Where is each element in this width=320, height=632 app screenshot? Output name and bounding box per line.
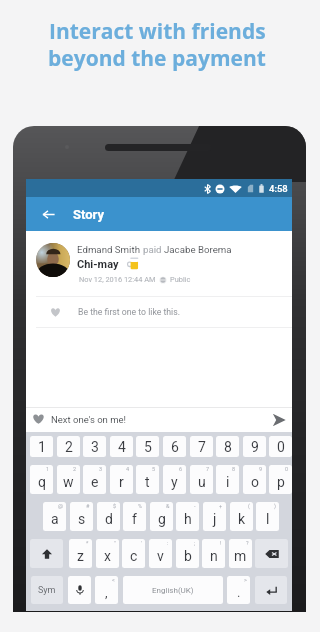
- button[interactable]: 8: [216, 436, 239, 457]
- staticText: 8: [224, 439, 232, 455]
- button[interactable]: Backspace: [255, 539, 288, 568]
- button[interactable]: !: [202, 539, 225, 568]
- button[interactable]: 4: [110, 436, 133, 457]
- button[interactable]: (: [230, 502, 253, 531]
- staticText: 0: [285, 466, 289, 472]
- button[interactable]: Back: [33, 197, 64, 231]
- staticText: p: [277, 474, 285, 490]
- button[interactable]: ): [256, 502, 279, 531]
- staticText: Nov 12, 2016 12:44 AM: [79, 275, 156, 284]
- staticText: *: [86, 540, 89, 546]
- staticText: >: [244, 577, 247, 583]
- button[interactable]: 0: [269, 436, 292, 457]
- button[interactable]: ;: [176, 539, 199, 568]
- staticText: c: [130, 548, 138, 564]
- button[interactable]: >: [227, 576, 250, 604]
- button[interactable]: 1: [30, 436, 53, 457]
- staticText: 8: [232, 466, 236, 472]
- button[interactable]: 9: [243, 465, 266, 494]
- staticText: Interact with friends: [49, 17, 266, 46]
- button[interactable]: <: [95, 576, 118, 604]
- button[interactable]: Shift: [30, 539, 63, 568]
- staticText: g: [158, 511, 166, 527]
- staticText: 2: [65, 439, 73, 455]
- staticText: $: [113, 503, 117, 509]
- staticText: ': [141, 540, 142, 546]
- staticText: 3: [91, 439, 99, 455]
- staticText: n: [210, 548, 218, 564]
- staticText: e: [91, 474, 99, 490]
- button[interactable]: English(UK): [123, 576, 223, 604]
- staticText: ;: [194, 540, 196, 546]
- staticText: (: [248, 503, 250, 509]
- staticText: -: [194, 503, 196, 509]
- button[interactable]: Enter: [255, 576, 287, 604]
- button[interactable]: 5: [136, 465, 159, 494]
- button[interactable]: %: [123, 502, 146, 531]
- button[interactable]: Voice input: [68, 576, 91, 604]
- button[interactable]: 1: [30, 465, 53, 494]
- staticText: u: [198, 474, 206, 490]
- button[interactable]: #: [70, 502, 93, 531]
- button[interactable]: 7: [190, 465, 213, 494]
- staticText: 3: [99, 466, 103, 472]
- staticText: ?: [246, 540, 249, 546]
- button[interactable]: Be the first one to like this.: [26, 297, 292, 327]
- staticText: f: [132, 511, 137, 527]
- staticText: Next one's on me!: [51, 414, 127, 425]
- staticText: b: [184, 548, 192, 564]
- staticText: #: [86, 503, 90, 509]
- staticText: 9: [251, 439, 259, 455]
- staticText: j: [213, 511, 217, 527]
- staticText: .: [237, 585, 241, 600]
- button[interactable]: ': [122, 539, 145, 568]
- button[interactable]: Sym: [31, 576, 63, 604]
- staticText: @: [58, 503, 63, 509]
- button[interactable]: $: [97, 502, 120, 531]
- button[interactable]: @: [43, 502, 66, 531]
- button[interactable]: &: [150, 502, 173, 531]
- staticText: h: [184, 511, 192, 527]
- button[interactable]: 3: [83, 465, 106, 494]
- button[interactable]: 6: [163, 465, 186, 494]
- button[interactable]: +: [203, 502, 226, 531]
- staticText: d: [105, 511, 113, 527]
- staticText: Story: [73, 207, 104, 222]
- button[interactable]: ?: [229, 539, 252, 568]
- staticText: 6: [179, 466, 183, 472]
- staticText: l: [266, 511, 270, 527]
- button[interactable]: 8: [216, 465, 239, 494]
- staticText: <: [112, 577, 115, 583]
- staticText: k: [238, 511, 246, 527]
- button[interactable]: *: [69, 539, 92, 568]
- button[interactable]: :: [149, 539, 172, 568]
- staticText: ,: [105, 585, 108, 600]
- staticText: 1: [46, 466, 50, 472]
- staticText: z: [77, 548, 84, 564]
- button[interactable]: 3: [83, 436, 106, 457]
- staticText: v: [157, 548, 164, 564]
- button[interactable]: 6: [163, 436, 186, 457]
- button[interactable]: 2: [57, 436, 80, 457]
- staticText: s: [78, 511, 86, 527]
- button[interactable]: 5: [136, 436, 159, 457]
- staticText: 5: [144, 439, 152, 455]
- button[interactable]: 4: [110, 465, 133, 494]
- staticText: Jacabe Borema: [164, 244, 232, 255]
- staticText: 4:58: [269, 183, 288, 194]
- button[interactable]: Send: [266, 407, 292, 432]
- staticText: :: [167, 540, 169, 546]
- staticText: ": [114, 540, 116, 546]
- staticText: t: [145, 474, 150, 490]
- button[interactable]: -: [176, 502, 199, 531]
- staticText: Be the first one to like this.: [78, 307, 181, 317]
- staticText: 5: [152, 466, 156, 472]
- button[interactable]: ": [96, 539, 119, 568]
- button[interactable]: 7: [190, 436, 213, 457]
- staticText: Edmand Smith: [77, 244, 143, 255]
- button[interactable]: 2: [57, 465, 80, 494]
- button[interactable]: 9: [243, 436, 266, 457]
- staticText: paid: [143, 244, 164, 255]
- staticText: &: [166, 503, 170, 509]
- button[interactable]: 0: [269, 465, 292, 494]
